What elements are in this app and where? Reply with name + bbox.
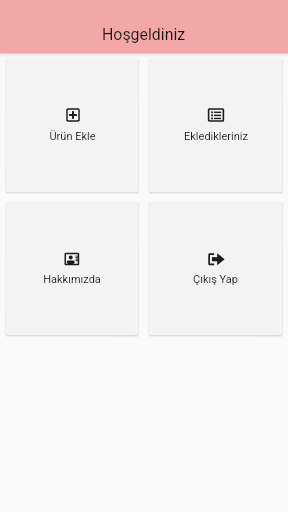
staticText: Hoşgeldiniz xyxy=(102,25,186,44)
button[interactable]: Add product xyxy=(6,59,138,192)
staticText: Çıkış Yap xyxy=(193,273,238,286)
staticText: Ürün Ekle xyxy=(49,130,96,143)
staticText: Ekledikleriniz xyxy=(184,130,248,143)
button[interactable]: About us xyxy=(6,202,138,335)
button[interactable]: Your items xyxy=(149,59,282,192)
button[interactable]: Log out xyxy=(149,202,282,335)
staticText: Hakkımızda xyxy=(43,273,101,286)
